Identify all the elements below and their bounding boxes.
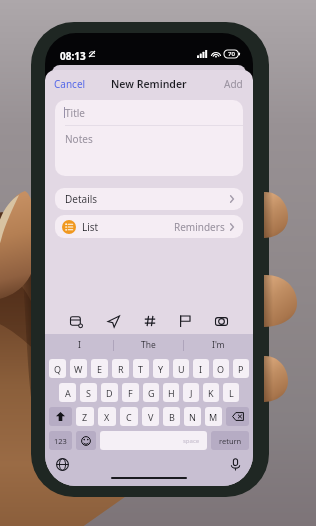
- staticText: C: [126, 411, 132, 423]
- staticText: U: [178, 363, 185, 375]
- staticText: space: [183, 437, 200, 445]
- button[interactable]: Dictate: [229, 458, 242, 471]
- button[interactable]: O: [213, 359, 229, 378]
- staticText: E: [97, 363, 103, 375]
- button[interactable]: Backspace: [226, 407, 249, 426]
- button[interactable]: B: [163, 407, 180, 426]
- button[interactable]: U: [173, 359, 189, 378]
- button[interactable]: F: [122, 383, 139, 402]
- staticText: List: [82, 220, 99, 234]
- staticText: O: [217, 363, 225, 375]
- staticText: A: [65, 387, 71, 399]
- button[interactable]: Shift: [49, 407, 72, 426]
- staticText: Y: [158, 363, 164, 375]
- staticText: 123: [54, 436, 67, 446]
- staticText: I'm: [212, 339, 225, 351]
- staticText: return: [219, 436, 242, 446]
- staticText: 70: [228, 50, 235, 58]
- button[interactable]: P: [233, 359, 249, 378]
- button[interactable]: J: [183, 383, 199, 402]
- staticText: 08:13: [60, 49, 86, 63]
- staticText: Z: [82, 411, 88, 423]
- button[interactable]: Q: [49, 359, 66, 378]
- staticText: Cancel: [54, 77, 86, 91]
- button[interactable]: W: [70, 359, 87, 378]
- button[interactable]: Add flag: [179, 315, 191, 327]
- staticText: Q: [54, 363, 62, 375]
- button[interactable]: T: [133, 359, 149, 378]
- button[interactable]: 123: [49, 431, 72, 450]
- staticText: N: [189, 411, 196, 423]
- button[interactable]: return: [211, 431, 249, 450]
- button[interactable]: Emoji: [76, 431, 96, 450]
- button[interactable]: Add date: [70, 315, 83, 328]
- button[interactable]: D: [101, 383, 118, 402]
- staticText: S: [86, 387, 91, 399]
- button[interactable]: N: [184, 407, 201, 426]
- button[interactable]: I: [45, 334, 113, 356]
- staticText: R: [118, 363, 124, 375]
- button[interactable]: X: [98, 407, 116, 426]
- staticText: G: [148, 387, 155, 399]
- staticText: New Reminder: [111, 77, 187, 91]
- staticText: Title: [65, 106, 85, 120]
- staticText: Notes: [65, 132, 93, 146]
- button[interactable]: Cancel: [45, 73, 95, 95]
- staticText: Add: [224, 77, 243, 91]
- button[interactable]: Add: [214, 73, 253, 95]
- button[interactable]: K: [203, 383, 219, 402]
- staticText: The: [141, 339, 156, 351]
- staticText: X: [104, 411, 110, 423]
- staticText: Details: [65, 192, 98, 206]
- button[interactable]: Add photo: [215, 315, 228, 328]
- staticText: K: [208, 387, 214, 399]
- staticText: I: [199, 363, 203, 375]
- button[interactable]: Change keyboard: [56, 458, 69, 471]
- staticText: L: [229, 387, 234, 399]
- button[interactable]: The: [114, 334, 183, 356]
- button[interactable]: C: [120, 407, 138, 426]
- staticText: F: [128, 387, 133, 399]
- button[interactable]: I'm: [184, 334, 253, 356]
- button[interactable]: V: [142, 407, 159, 426]
- staticText: I: [78, 339, 81, 351]
- button[interactable]: E: [91, 359, 108, 378]
- button[interactable]: Y: [153, 359, 169, 378]
- staticText: W: [74, 363, 83, 375]
- staticText: T: [138, 363, 144, 375]
- button[interactable]: M: [205, 407, 222, 426]
- staticText: D: [106, 387, 113, 399]
- button[interactable]: S: [80, 383, 97, 402]
- button[interactable]: H: [163, 383, 179, 402]
- button[interactable]: List: [55, 215, 243, 238]
- button[interactable]: Details: [55, 188, 243, 210]
- staticText: B: [169, 411, 175, 423]
- staticText: M: [209, 411, 218, 423]
- button[interactable]: Add tag: [144, 315, 156, 327]
- button[interactable]: I: [193, 359, 209, 378]
- button[interactable]: R: [112, 359, 129, 378]
- button[interactable]: Add location: [107, 315, 120, 328]
- staticText: J: [190, 387, 193, 399]
- staticText: Reminders: [174, 220, 225, 234]
- button[interactable]: A: [59, 383, 76, 402]
- button[interactable]: G: [143, 383, 159, 402]
- staticText: P: [238, 363, 244, 375]
- button[interactable]: space: [100, 431, 207, 450]
- button[interactable]: L: [223, 383, 239, 402]
- button[interactable]: Z: [76, 407, 94, 426]
- staticText: V: [148, 411, 154, 423]
- staticText: H: [168, 387, 175, 399]
